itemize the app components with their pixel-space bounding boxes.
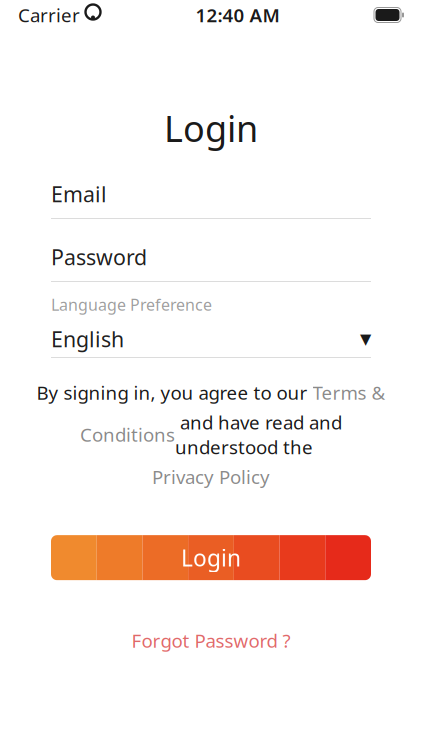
button[interactable]: Language Preference: [51, 296, 371, 358]
button[interactable]: Password: [51, 246, 371, 282]
staticText: Language Preference: [51, 294, 212, 315]
button[interactable]: Login: [51, 535, 371, 580]
staticText: and have read and understood the: [175, 410, 342, 459]
staticText: English: [51, 325, 124, 353]
staticText: ▼: [360, 331, 371, 347]
staticText: Carrier: [18, 3, 80, 27]
staticText: Email: [51, 180, 107, 208]
button[interactable]: Email: [51, 183, 371, 219]
staticText: Password: [51, 243, 147, 271]
staticText: Forgot Password ?: [131, 628, 290, 653]
staticText: Conditions: [80, 422, 175, 447]
staticText: Login: [181, 543, 241, 573]
button[interactable]: Forgot Password ?: [51, 618, 371, 663]
staticText: Login: [164, 104, 258, 152]
staticText: By signing in, you agree to our: [36, 380, 312, 405]
staticText: Privacy Policy: [152, 464, 270, 489]
staticText: Terms &: [312, 380, 385, 405]
staticText: 12:40 AM: [195, 3, 279, 27]
